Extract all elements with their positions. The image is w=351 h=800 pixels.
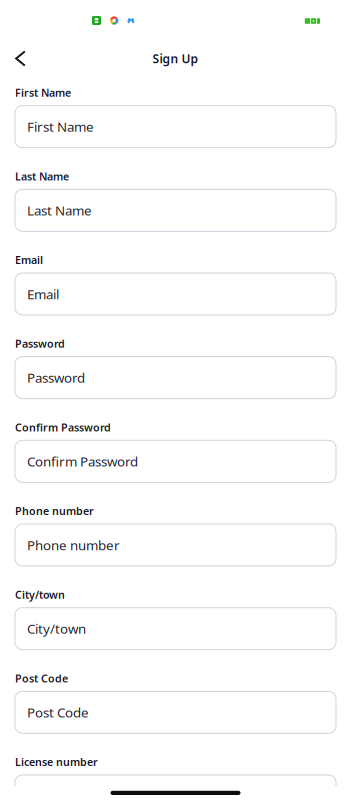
button[interactable]: Password bbox=[15, 357, 336, 399]
button[interactable]: Confirm Password bbox=[15, 440, 336, 482]
staticText: Last Name bbox=[15, 169, 69, 183]
button[interactable]: Email bbox=[15, 273, 336, 315]
staticText: License number bbox=[15, 755, 98, 769]
staticText: Sign Up bbox=[152, 50, 198, 66]
staticText: Last Name bbox=[27, 201, 92, 219]
button[interactable]: License number bbox=[15, 775, 336, 800]
button[interactable]: First Name bbox=[15, 106, 336, 148]
button[interactable]: City/town bbox=[15, 608, 336, 650]
staticText: Phone number bbox=[15, 504, 94, 518]
staticText: Password bbox=[15, 336, 65, 351]
button[interactable]: Post Code bbox=[15, 691, 336, 733]
button[interactable]: Back bbox=[0, 37, 38, 75]
staticText: City/town bbox=[27, 620, 86, 637]
staticText: Post Code bbox=[15, 671, 68, 685]
staticText: Email bbox=[27, 285, 59, 303]
staticText: First Name bbox=[27, 118, 94, 135]
staticText: Email bbox=[15, 253, 43, 267]
staticText: Confirm Password bbox=[27, 452, 138, 470]
staticText: License number bbox=[27, 787, 126, 800]
staticText: Phone number bbox=[27, 536, 120, 554]
button[interactable]: Phone number bbox=[15, 524, 336, 566]
button[interactable]: Last Name bbox=[15, 189, 336, 231]
staticText: Confirm Password bbox=[15, 420, 111, 434]
staticText: City/town bbox=[15, 587, 65, 602]
staticText: Post Code bbox=[27, 703, 89, 721]
staticText: First Name bbox=[15, 85, 71, 100]
staticText: Password bbox=[27, 369, 85, 386]
